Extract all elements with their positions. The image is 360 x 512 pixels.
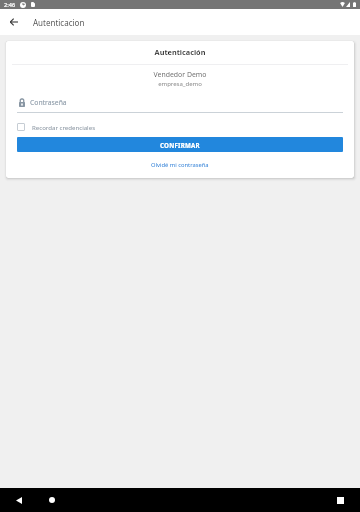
- staticText: Vendedor Demo: [6, 70, 354, 79]
- staticText: empresa_demo: [6, 80, 354, 88]
- staticText: CONFIRMAR: [160, 141, 200, 149]
- button[interactable]: Back: [0, 9, 27, 35]
- staticText: 2:46: [4, 1, 16, 9]
- staticText: Contraseña: [30, 98, 67, 107]
- button[interactable]: Recent apps: [329, 489, 351, 511]
- button[interactable]: Recordar credenciales: [17, 123, 96, 131]
- button[interactable]: Home: [41, 489, 63, 511]
- button[interactable]: Back: [8, 489, 30, 511]
- staticText: Autenticación: [6, 47, 354, 57]
- button[interactable]: Contraseña: [17, 98, 343, 113]
- staticText: Autenticacion: [33, 17, 85, 28]
- button[interactable]: CONFIRMAR: [17, 137, 343, 152]
- staticText: Recordar credenciales: [32, 123, 96, 131]
- button[interactable]: Olvidé mi contraseña: [147, 160, 213, 170]
- staticText: Olvidé mi contraseña: [151, 161, 209, 169]
